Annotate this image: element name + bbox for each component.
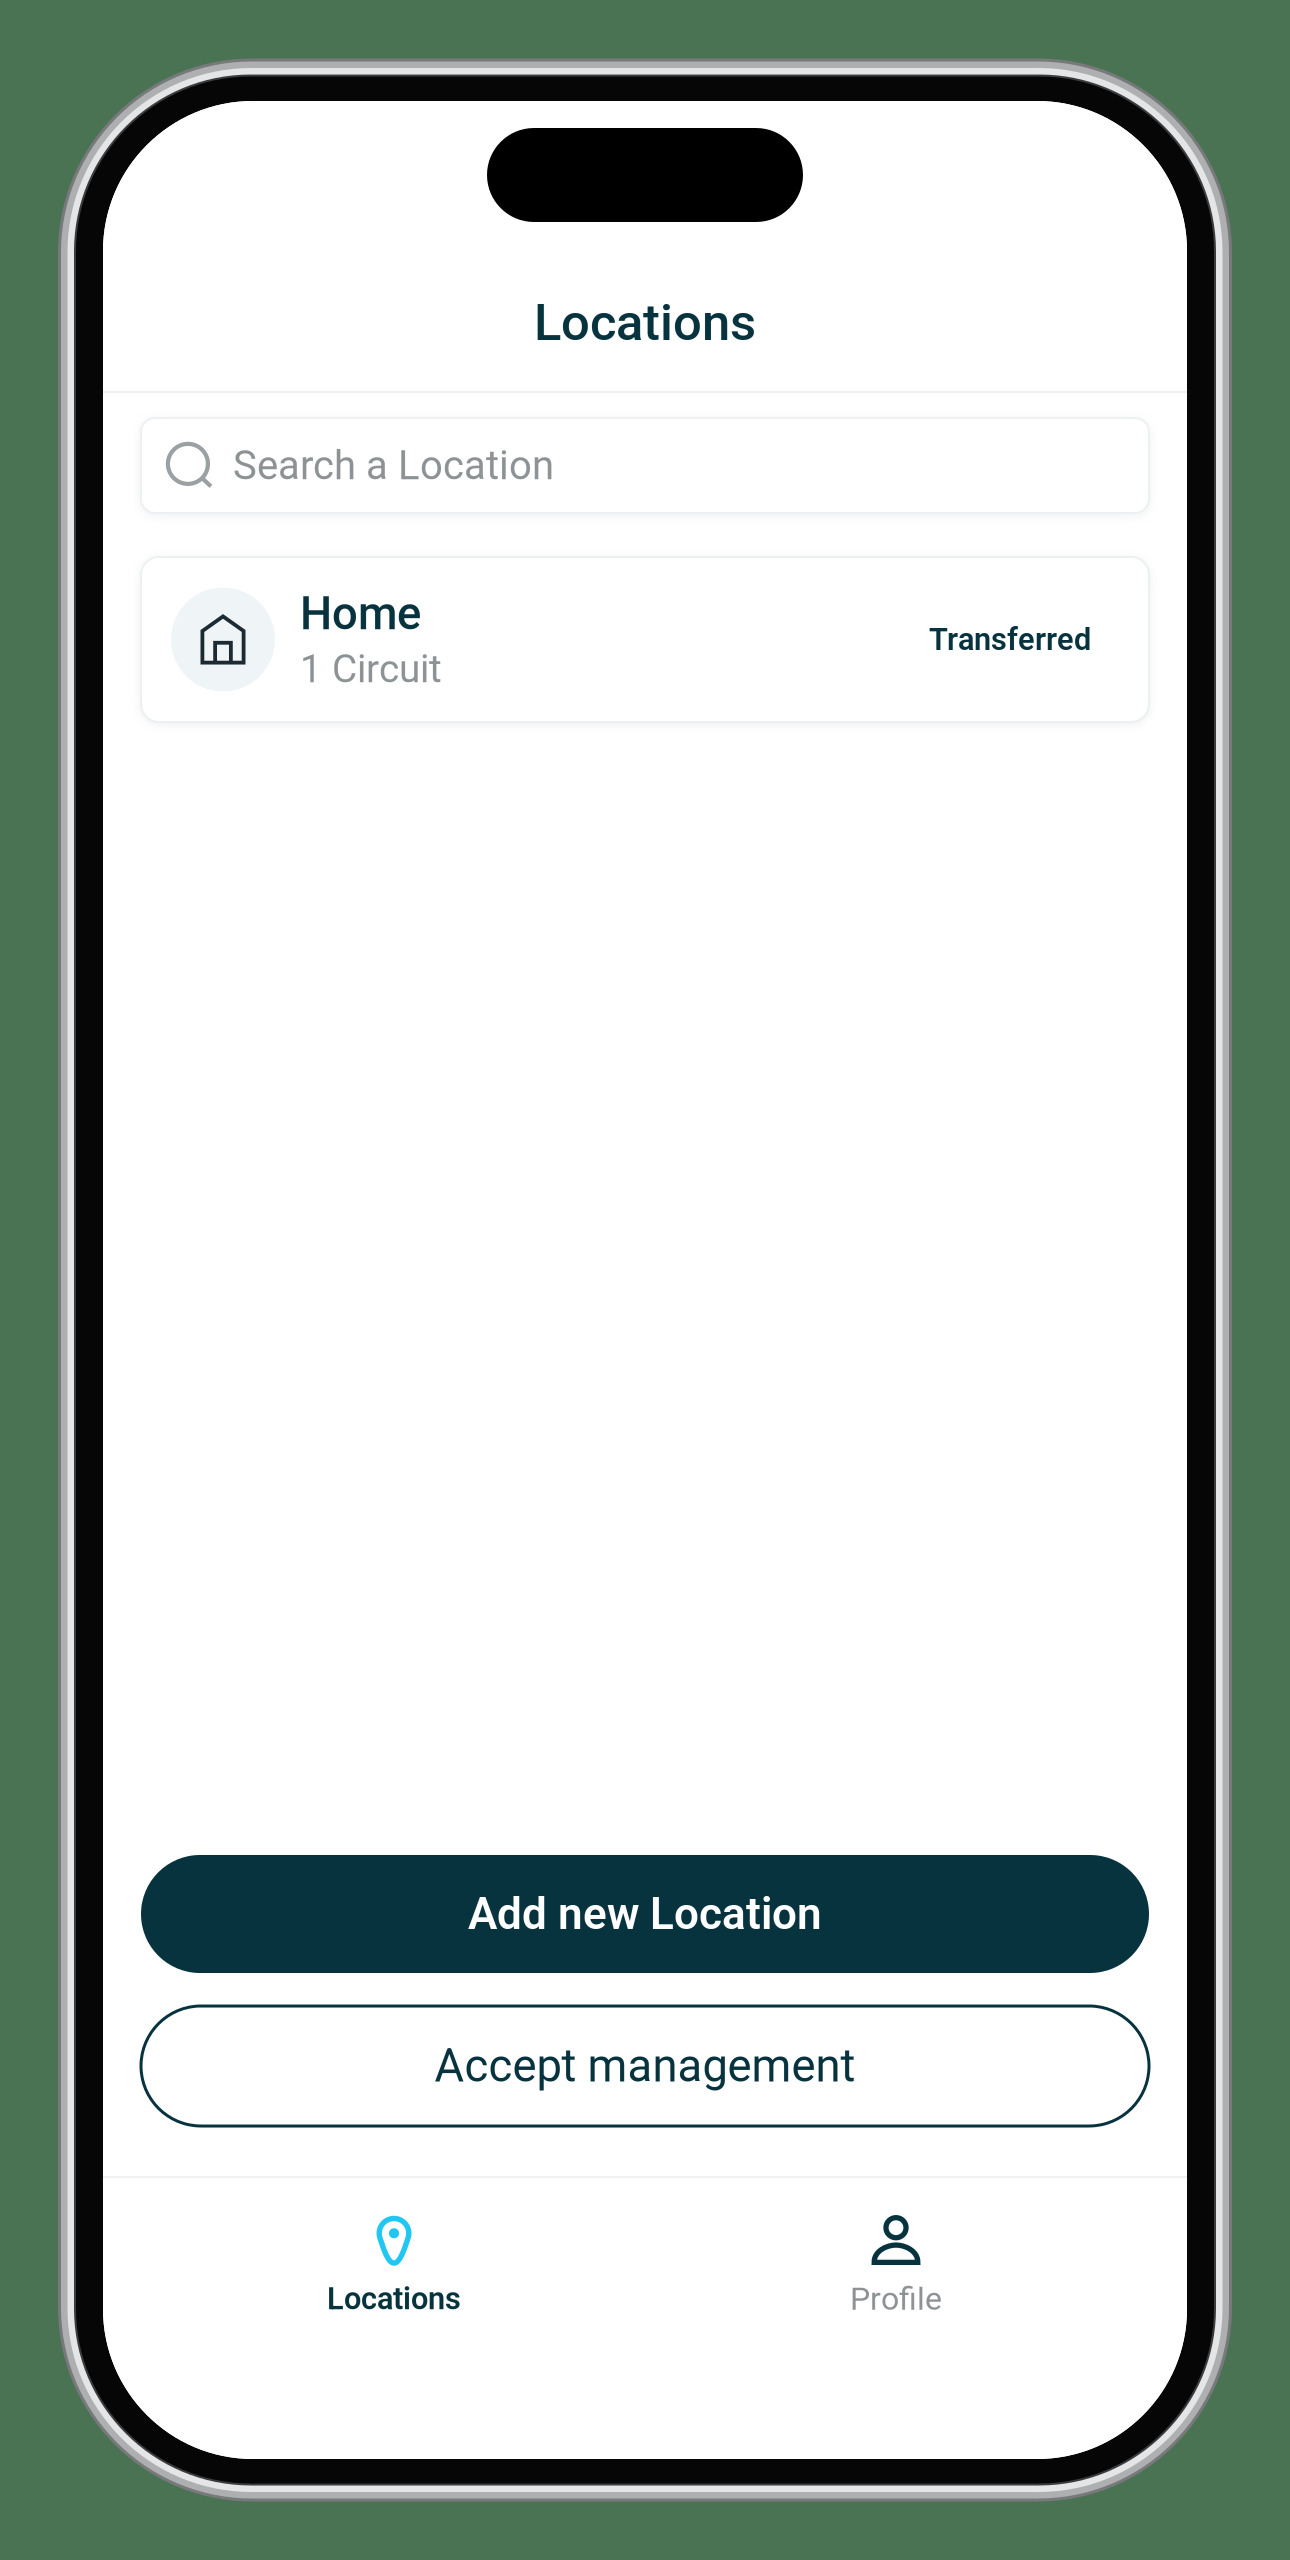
staticText: 1 Circuit <box>300 646 442 692</box>
button[interactable]: Search a Location <box>141 418 1149 513</box>
button[interactable]: Accept management <box>141 2006 1149 2126</box>
staticText: Accept management <box>434 2039 855 2092</box>
staticText: Transferred <box>929 621 1091 657</box>
button[interactable]: Add new Location <box>141 1855 1149 1973</box>
button[interactable]: Locations tab, selected <box>143 2216 645 2317</box>
staticText: Locations <box>327 2281 461 2317</box>
staticText: Home <box>300 587 421 640</box>
staticText: Profile <box>850 2280 942 2317</box>
staticText: Add new Location <box>468 1888 822 1940</box>
staticText: Search a Location <box>233 442 554 489</box>
button[interactable]: Home, 1 Circuit, Transferred <box>141 557 1149 722</box>
button[interactable]: Profile tab <box>645 2215 1147 2317</box>
staticText: Locations <box>534 293 756 352</box>
